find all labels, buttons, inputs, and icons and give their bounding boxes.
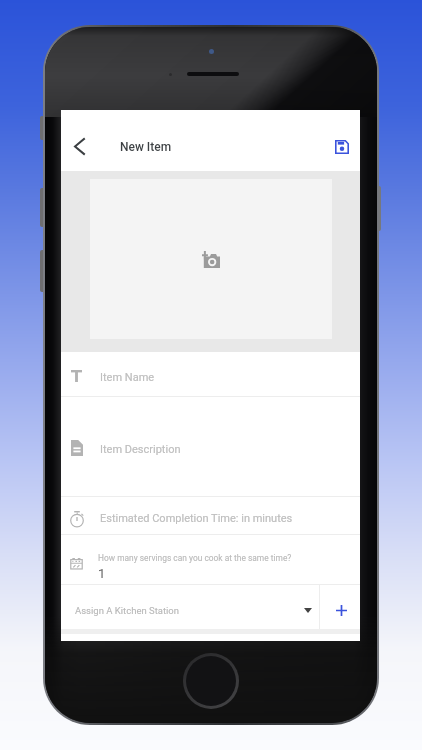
button[interactable]: Add station bbox=[320, 585, 360, 629]
button[interactable]: Back bbox=[61, 122, 97, 171]
staticText: Item Description bbox=[100, 443, 181, 456]
staticText: Item Name bbox=[100, 371, 155, 384]
button[interactable]: Assign A Kitchen Station bbox=[61, 585, 319, 629]
staticText: Assign A Kitchen Station bbox=[75, 605, 180, 616]
staticText: How many servings can you cook at the sa… bbox=[98, 553, 292, 563]
button[interactable]: Estimated Completion Time: in minutes bbox=[61, 497, 360, 534]
button[interactable]: Add photo bbox=[90, 179, 332, 339]
button[interactable]: How many servings can you cook at the sa… bbox=[61, 535, 360, 584]
staticText: New Item bbox=[120, 140, 172, 154]
button[interactable]: Item Name bbox=[61, 352, 360, 396]
button[interactable]: Item Description bbox=[61, 397, 360, 496]
staticText: 1 bbox=[98, 566, 106, 581]
staticText: Estimated Completion Time: in minutes bbox=[100, 512, 293, 525]
button[interactable]: Save bbox=[323, 122, 360, 171]
